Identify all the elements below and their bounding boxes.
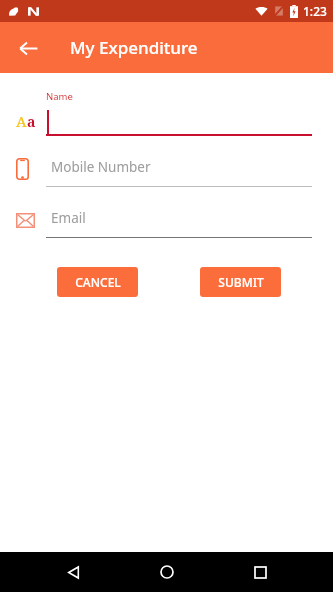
button[interactable]: SUBMIT	[200, 267, 281, 297]
staticText: CANCEL	[75, 274, 121, 290]
button[interactable]: Recent apps	[240, 552, 280, 592]
staticText: My Expenditure	[70, 36, 198, 59]
staticText: A	[16, 111, 27, 131]
staticText: SUBMIT	[218, 274, 264, 290]
button[interactable]: Home	[147, 552, 187, 592]
staticText: Name	[46, 90, 73, 103]
staticText: 1:23	[303, 3, 327, 19]
staticText: Email	[51, 209, 86, 227]
staticText: Mobile Number	[51, 158, 151, 176]
button[interactable]: Email	[0, 202, 333, 238]
staticText: a	[27, 112, 36, 131]
button[interactable]: Mobile Number	[0, 151, 333, 187]
button[interactable]: Back	[10, 30, 46, 66]
button[interactable]: Name	[0, 90, 333, 136]
button[interactable]: CANCEL	[57, 267, 138, 297]
button[interactable]: Back	[53, 552, 93, 592]
